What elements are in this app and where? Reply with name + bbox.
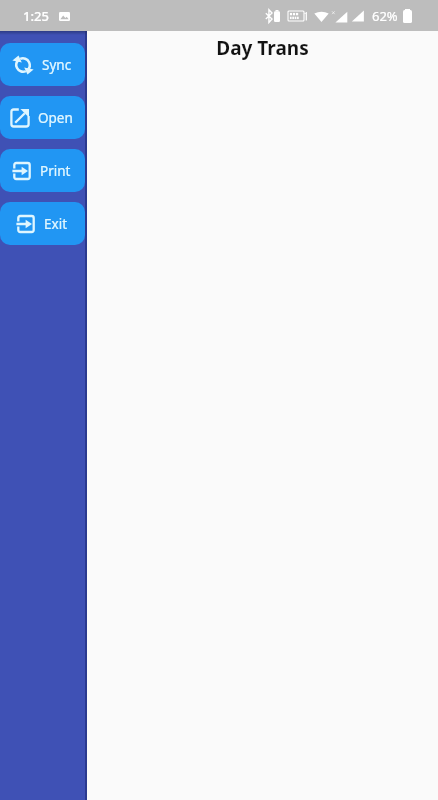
staticText: 62%	[372, 7, 398, 25]
staticText: Day Trans	[87, 35, 438, 61]
button[interactable]: Exit	[0, 202, 85, 245]
staticText: Open	[38, 109, 73, 127]
button[interactable]: Open	[0, 96, 85, 139]
button[interactable]: Sync	[0, 43, 85, 86]
staticText: 1:25	[23, 7, 49, 25]
staticText: Exit	[44, 215, 68, 233]
button[interactable]: Print	[0, 149, 85, 192]
staticText: Print	[40, 162, 71, 180]
staticText: Sync	[42, 56, 72, 74]
